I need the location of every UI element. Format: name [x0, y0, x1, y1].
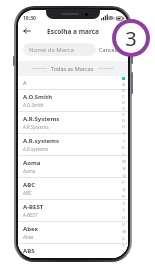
staticText: B [122, 88, 125, 93]
button[interactable]: W [119, 228, 128, 235]
staticText: N [122, 166, 126, 171]
staticText: Cancelar [99, 46, 122, 53]
staticText: K [122, 145, 125, 150]
staticText: ABS [23, 247, 35, 255]
button[interactable]: Back [18, 22, 36, 40]
button[interactable]: G [119, 117, 128, 123]
staticText: R [122, 194, 125, 199]
staticText: ABC [23, 190, 32, 196]
button[interactable]: A [119, 81, 128, 87]
staticText: I [123, 131, 125, 136]
button[interactable]: Aoma [18, 156, 128, 178]
button[interactable]: T [119, 207, 128, 214]
button[interactable]: A.O.Smith [18, 90, 128, 112]
button[interactable]: D [119, 99, 128, 105]
staticText: Q [122, 187, 126, 192]
button[interactable]: A.R.systems [18, 134, 128, 156]
staticText: ABC [23, 181, 35, 189]
button[interactable]: A.R.Systems [18, 112, 128, 134]
staticText: Abex [23, 234, 34, 240]
button[interactable]: E [119, 105, 128, 111]
staticText: S [122, 201, 125, 206]
staticText: A.O.Smith [23, 93, 53, 101]
staticText: Nome da Marca [29, 46, 74, 54]
staticText: O [122, 173, 126, 178]
staticText: A.R.Systems [23, 124, 49, 130]
button[interactable]: H [119, 123, 128, 130]
staticText: A.O.Smith [23, 102, 44, 108]
button[interactable]: F [119, 111, 128, 117]
staticText: Todas as Marcas [51, 65, 94, 72]
staticText: T [122, 208, 125, 213]
staticText: Aoma [23, 168, 36, 174]
staticText: A [23, 79, 27, 86]
staticText: A.R.Systems [23, 115, 60, 123]
button[interactable]: S [119, 200, 128, 207]
staticText: A.R.systems [23, 137, 59, 145]
button[interactable]: K [119, 144, 128, 151]
staticText: G [122, 118, 125, 123]
button[interactable]: Y [119, 242, 128, 249]
staticText: Abex [23, 225, 38, 233]
button[interactable]: O [119, 172, 128, 179]
button[interactable]: A-BEST [18, 200, 128, 222]
staticText: L [122, 152, 125, 157]
button[interactable]: Abex [18, 222, 128, 244]
button[interactable]: C [119, 93, 128, 99]
staticText: J [123, 138, 125, 143]
button[interactable]: B [119, 87, 128, 93]
staticText: E [122, 106, 125, 111]
staticText: X [122, 236, 125, 241]
staticText: P [122, 180, 125, 185]
button[interactable]: Z [119, 249, 128, 256]
button[interactable]: Cancelar [96, 43, 125, 56]
button[interactable]: M [119, 158, 128, 165]
staticText: 10:30 [23, 15, 36, 22]
staticText: Escolha a marca [47, 27, 99, 36]
staticText: U [122, 215, 125, 220]
button[interactable]: R [119, 193, 128, 200]
staticText: F [122, 112, 125, 117]
staticText: D [122, 100, 125, 105]
staticText: A-BEST [23, 212, 38, 218]
button[interactable]: P [119, 179, 128, 186]
button[interactable]: Nome da Marca [23, 43, 96, 56]
button[interactable]: L [119, 151, 128, 158]
button[interactable]: Step 3 [112, 19, 150, 57]
button[interactable]: N [119, 165, 128, 172]
button[interactable]: J [119, 137, 128, 144]
staticText: A-BEST [23, 203, 44, 211]
staticText: Z [122, 250, 125, 255]
button[interactable]: I [119, 130, 128, 137]
button[interactable]: ABS [18, 244, 128, 258]
staticText: C [122, 94, 125, 99]
staticText: Aoma [23, 159, 41, 167]
staticText: Y [122, 243, 125, 248]
button[interactable]: U [119, 214, 128, 221]
staticText: 3 [125, 25, 137, 52]
button[interactable]: Q [119, 186, 128, 193]
button[interactable]: V [119, 221, 128, 228]
button[interactable]: X [119, 235, 128, 242]
button[interactable]: ABC [18, 178, 128, 200]
staticText: A [122, 82, 125, 87]
staticText: M [122, 159, 126, 164]
staticText: V [122, 222, 125, 227]
staticText: H [122, 124, 125, 129]
staticText: A.R.systems [23, 146, 49, 152]
staticText: W [122, 229, 126, 234]
